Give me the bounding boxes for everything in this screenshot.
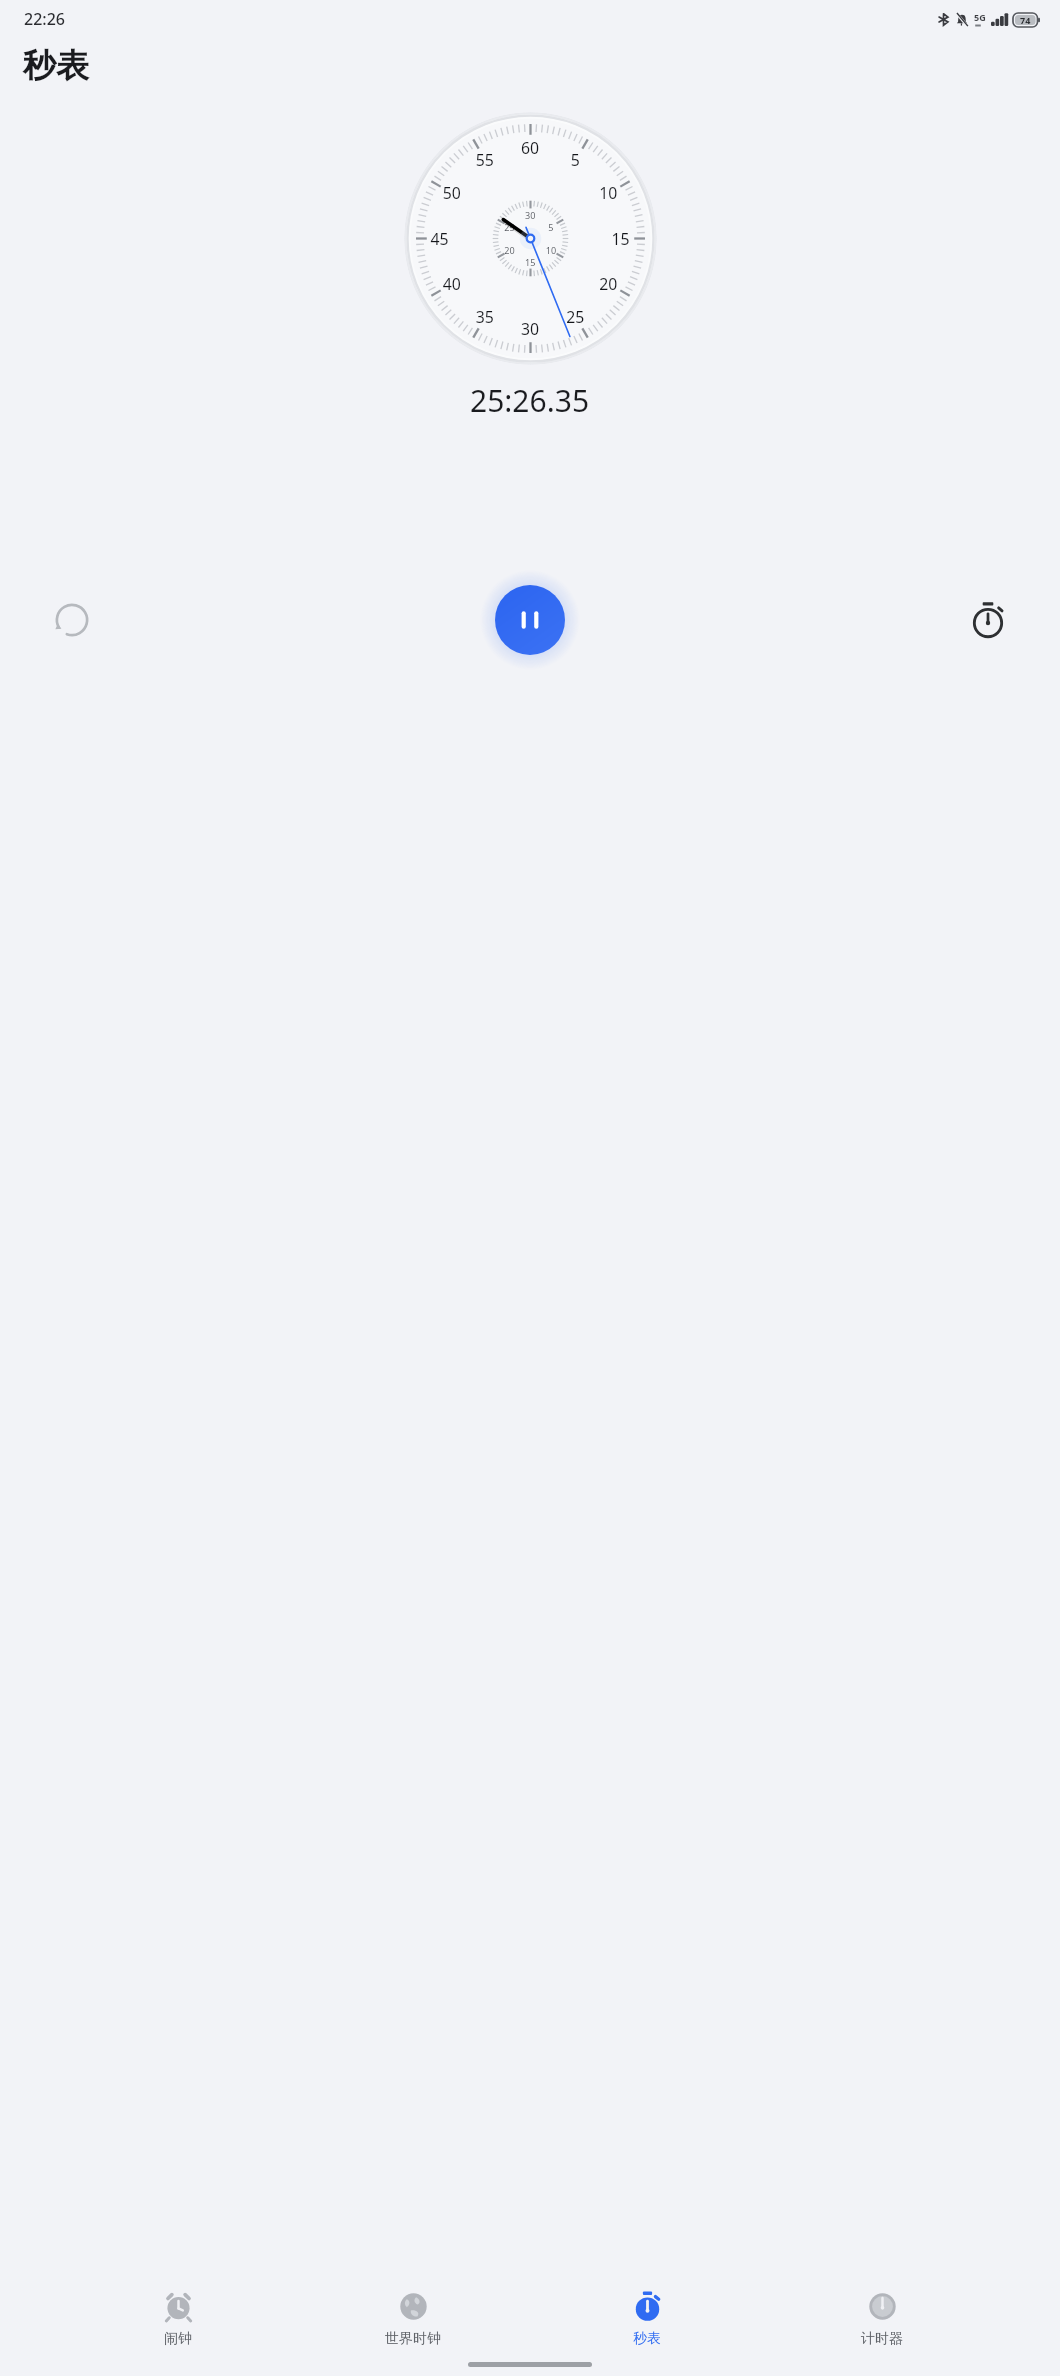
button[interactable]: Reset: [36, 584, 108, 656]
staticText: 秒表: [23, 45, 89, 87]
button[interactable]: 闹钟: [122, 2286, 234, 2352]
staticText: 5G: [974, 11, 986, 23]
staticText: 世界时钟: [385, 2330, 441, 2348]
staticText: 闹钟: [164, 2330, 192, 2348]
staticText: 25:26.35: [470, 380, 590, 421]
staticText: 计时器: [861, 2330, 903, 2348]
staticText: 秒表: [633, 2330, 661, 2348]
staticText: 22:26: [24, 8, 65, 30]
button[interactable]: Lap: [952, 584, 1024, 656]
button[interactable]: 秒表: [591, 2286, 703, 2352]
button[interactable]: 世界时钟: [357, 2286, 469, 2352]
staticText: 74: [1020, 14, 1031, 26]
button[interactable]: 计时器: [826, 2286, 938, 2352]
button[interactable]: Pause: [480, 570, 580, 670]
